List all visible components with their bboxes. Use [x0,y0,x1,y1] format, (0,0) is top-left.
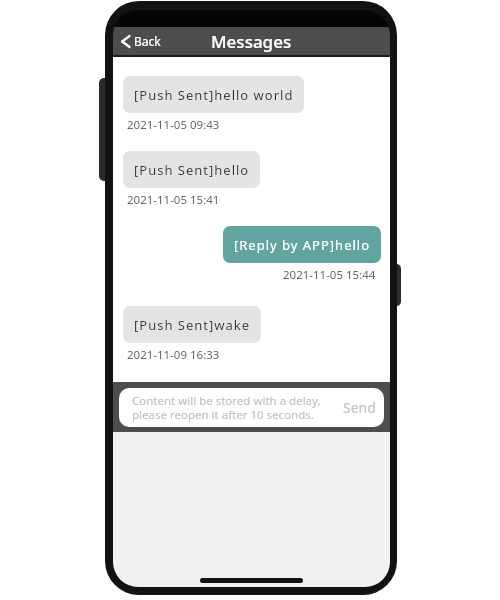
staticText: [Push Sent]hello [134,161,250,179]
staticText: Send [343,398,376,417]
staticText: [Reply by APP]hello [234,236,371,254]
staticText: 2021-11-05 09:43 [127,117,220,133]
staticText: Back [134,33,161,49]
button[interactable]: Send [333,389,384,426]
button[interactable]: [Reply by APP]hello [223,226,381,263]
staticText: 2021-11-05 15:41 [127,192,220,208]
button[interactable]: Content will be stored with a delay, ple… [119,388,333,427]
staticText: Content will be stored with a delay, ple… [132,393,321,422]
staticText: Messages [211,30,292,53]
staticText: [Push Sent]hello world [134,86,294,104]
button[interactable]: [Push Sent]wake [123,306,261,343]
button[interactable]: [Push Sent]hello world [123,76,304,113]
button[interactable]: [Push Sent]hello [123,151,260,188]
staticText: [Push Sent]wake [134,316,251,334]
button[interactable]: Back [113,29,167,53]
staticText: 2021-11-05 15:44 [283,267,376,283]
staticText: 2021-11-09 16:33 [127,347,220,363]
